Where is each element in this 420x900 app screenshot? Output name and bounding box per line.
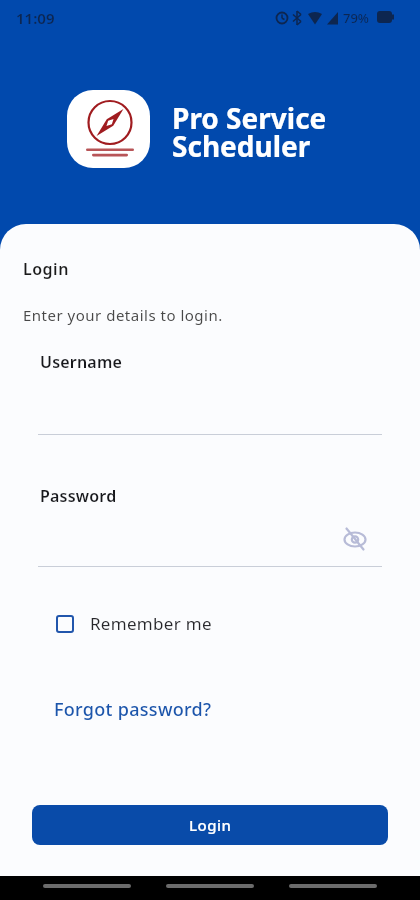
button[interactable]: Forgot password? <box>54 697 212 722</box>
staticText: 11:09 <box>16 8 55 28</box>
staticText: Login <box>189 815 232 835</box>
staticText: Enter your details to login. <box>23 305 223 325</box>
button[interactable] <box>289 884 377 888</box>
staticText: Username <box>40 351 123 373</box>
button[interactable] <box>342 526 368 552</box>
staticText: Login <box>23 258 69 280</box>
staticText: Remember me <box>90 612 212 635</box>
button[interactable]: Login <box>32 805 388 845</box>
button[interactable]: Remember me <box>56 612 212 635</box>
staticText: Password <box>40 485 117 507</box>
staticText: 79% <box>343 9 369 27</box>
button[interactable] <box>166 884 254 888</box>
button[interactable] <box>43 884 131 888</box>
staticText: Pro Service Scheduler <box>172 99 327 166</box>
